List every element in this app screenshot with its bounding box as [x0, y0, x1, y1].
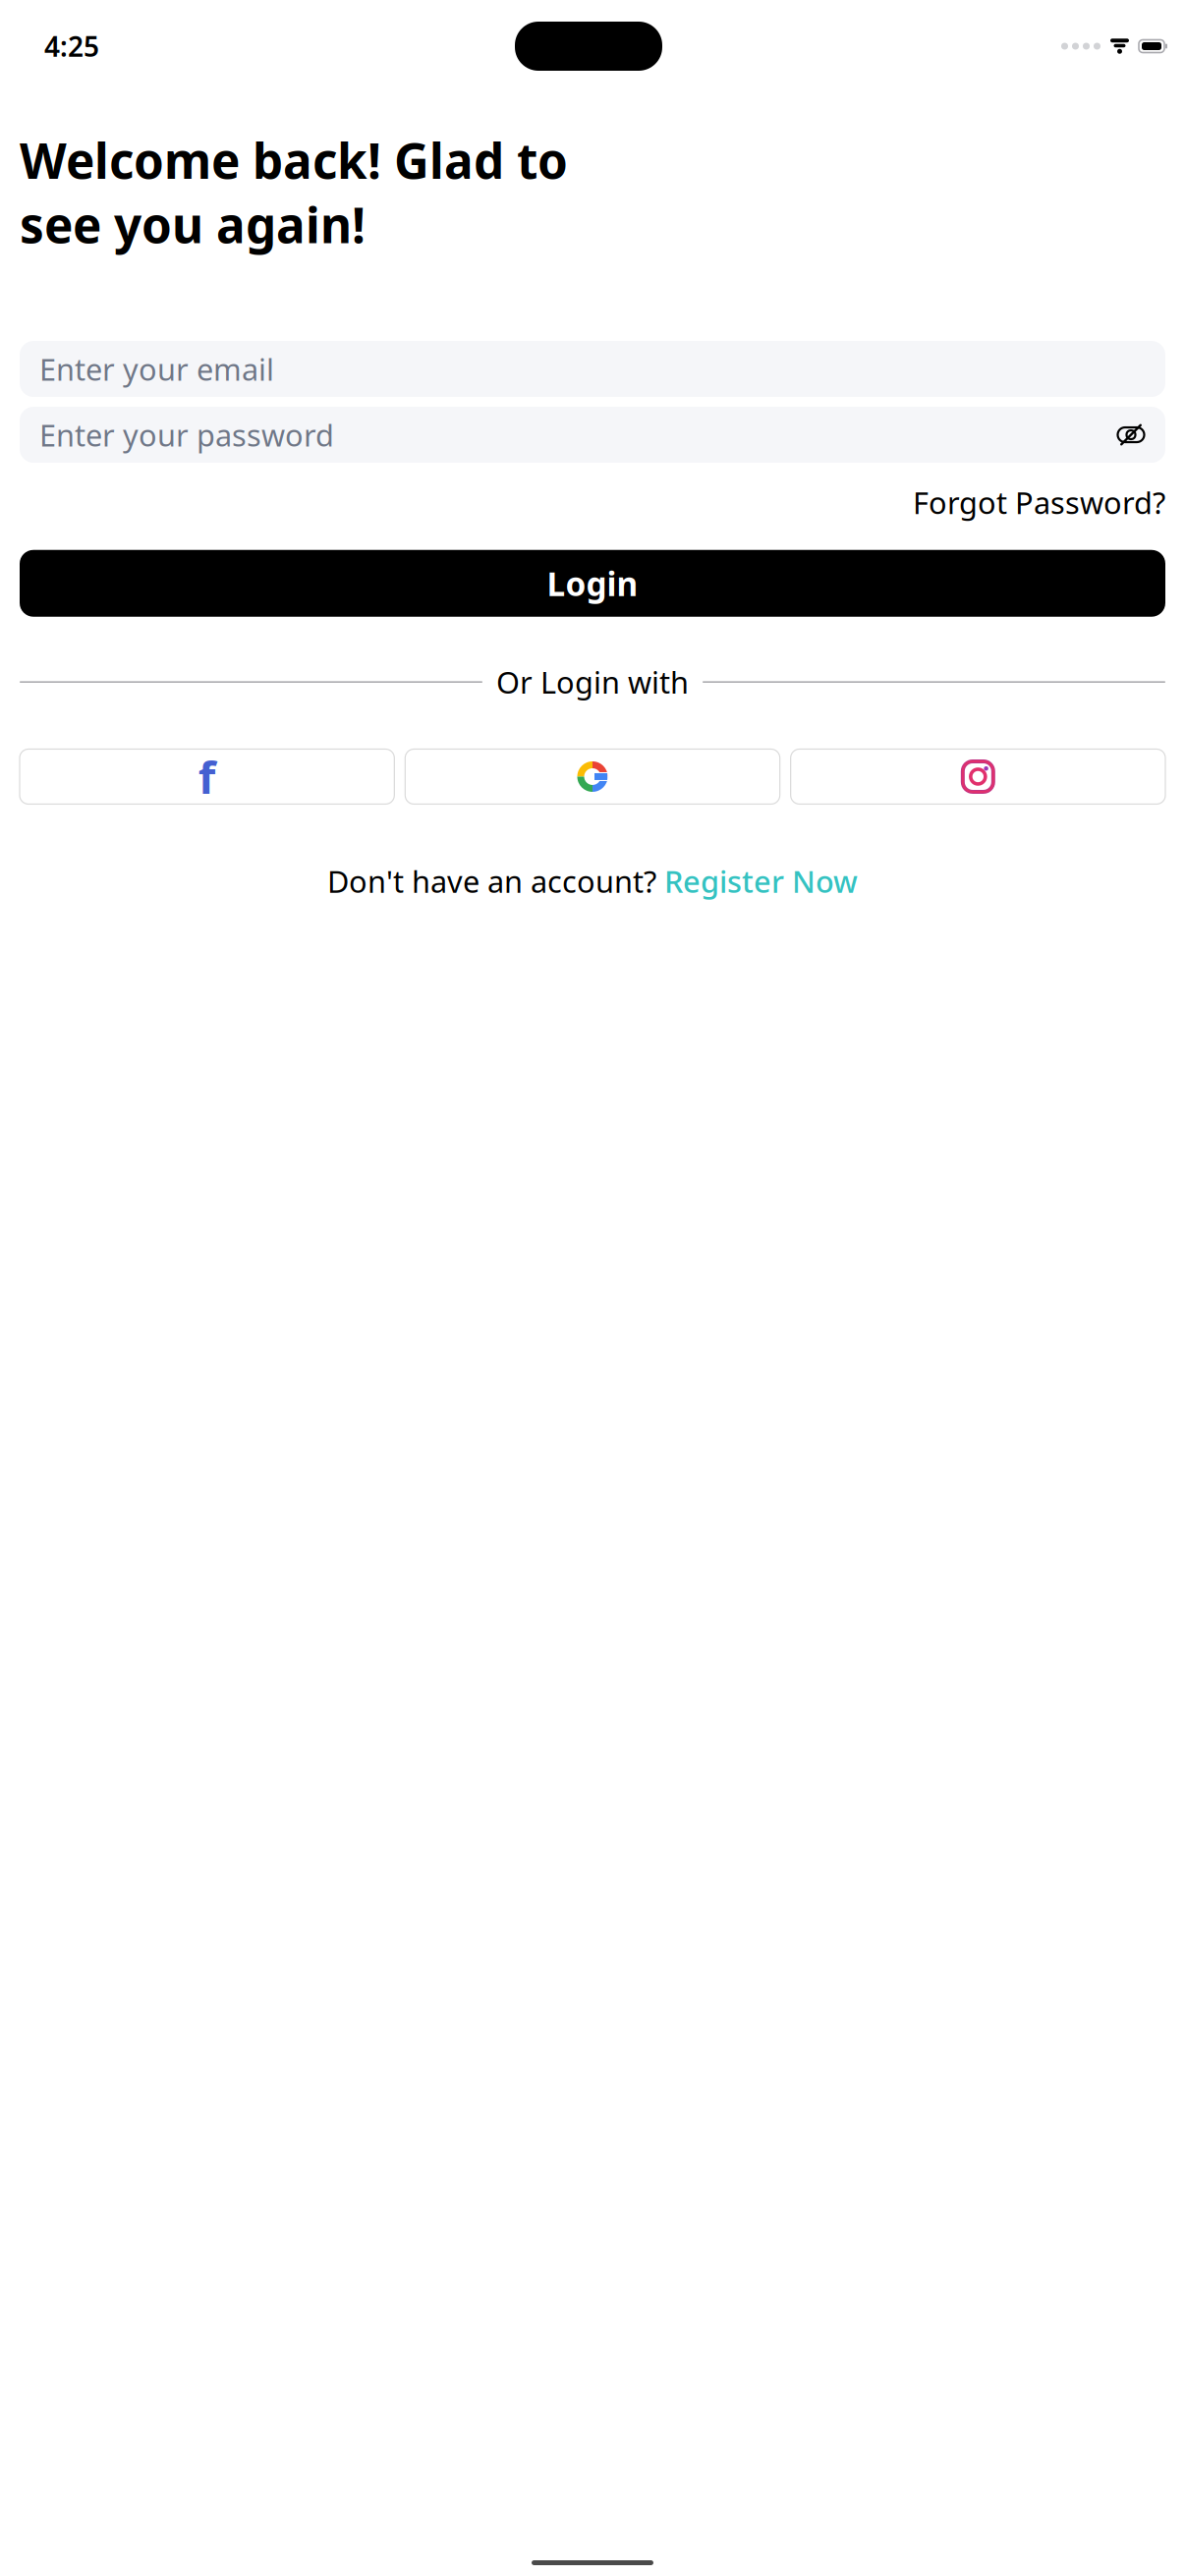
staticText: Welcome back! Glad to see you again! [20, 128, 568, 256]
button[interactable]: Sign in with Instagram [791, 749, 1165, 804]
staticText: Don't have an account? [327, 861, 656, 901]
button[interactable]: Login [20, 550, 1165, 617]
staticText: Login [547, 562, 638, 605]
button[interactable]: Sign in with Google [405, 749, 780, 804]
button[interactable]: Don't have an account? [327, 855, 858, 907]
button[interactable]: Enter your email [20, 341, 1165, 397]
staticText: Enter your password [39, 415, 334, 455]
staticText: 4:25 [44, 28, 99, 64]
staticText: f [198, 747, 216, 806]
staticText: Or Login with [496, 662, 689, 702]
button[interactable]: Forgot Password? [913, 476, 1165, 528]
button[interactable]: Sign in with Facebook [20, 749, 394, 804]
staticText: Forgot Password? [913, 482, 1165, 522]
staticText: Enter your email [39, 349, 274, 389]
staticText: Register Now [664, 861, 858, 901]
button[interactable]: Enter your password [20, 407, 1165, 463]
